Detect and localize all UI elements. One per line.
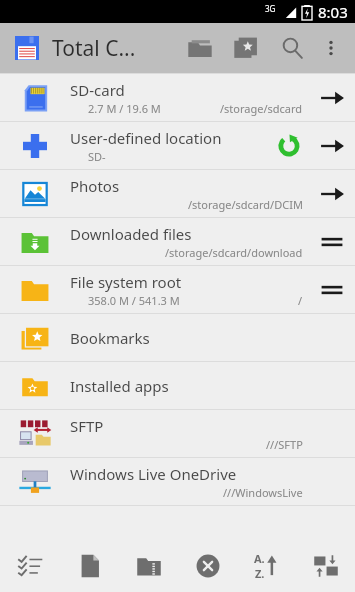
staticText: /storage/sdcard/download bbox=[165, 245, 303, 260]
staticText: Z. bbox=[255, 566, 265, 581]
staticText: ///SFTP bbox=[266, 437, 303, 452]
button[interactable]: More options bbox=[317, 34, 345, 62]
button[interactable]: User-defined location bbox=[0, 122, 355, 169]
staticText: 3G bbox=[265, 3, 276, 14]
button[interactable]: SD-card bbox=[0, 74, 355, 121]
button[interactable]: Menu bbox=[315, 273, 349, 307]
staticText: Bookmarks bbox=[70, 328, 150, 348]
button[interactable]: Cancel bbox=[178, 540, 237, 592]
button[interactable]: Bookmarks bbox=[0, 314, 355, 361]
staticText: SFTP bbox=[70, 416, 104, 436]
staticText: User-defined location bbox=[70, 128, 222, 148]
staticText: /storage/sdcard/DCIM bbox=[188, 197, 303, 212]
button[interactable]: Installed apps bbox=[0, 362, 355, 409]
button[interactable]: Photos bbox=[0, 170, 355, 217]
staticText: Photos bbox=[70, 176, 120, 196]
staticText: / bbox=[298, 293, 303, 308]
button[interactable]: Search bbox=[275, 31, 309, 65]
staticText: /storage/sdcard bbox=[220, 101, 303, 116]
staticText: A. bbox=[254, 551, 265, 566]
button[interactable]: Select bbox=[0, 540, 60, 592]
button[interactable]: Downloaded files bbox=[0, 218, 355, 265]
button[interactable]: Open bbox=[315, 81, 349, 115]
staticText: Installed apps bbox=[70, 376, 169, 396]
button[interactable]: Bookmarks bbox=[229, 31, 263, 65]
button[interactable]: Open bbox=[315, 177, 349, 211]
button[interactable]: Zip bbox=[119, 540, 178, 592]
staticText: SD- bbox=[88, 149, 106, 164]
button[interactable]: Folders bbox=[183, 31, 217, 65]
button[interactable]: Menu bbox=[315, 225, 349, 259]
staticText: 358.0 M / 541.3 M bbox=[88, 293, 180, 308]
button[interactable]: Sort bbox=[237, 540, 296, 592]
staticText: Total C... bbox=[52, 34, 136, 63]
button[interactable]: Exchange bbox=[296, 540, 355, 592]
button[interactable]: Windows Live OneDrive bbox=[0, 458, 355, 505]
staticText: ///WindowsLive bbox=[223, 485, 303, 500]
staticText: SD-card bbox=[70, 80, 125, 100]
staticText: Windows Live OneDrive bbox=[70, 464, 237, 484]
staticText: 8:03 bbox=[318, 2, 348, 22]
staticText: 2.7 M / 19.6 M bbox=[88, 101, 161, 116]
staticText: File system root bbox=[70, 272, 182, 292]
button[interactable]: New file bbox=[60, 540, 119, 592]
button[interactable]: SFTP bbox=[0, 410, 355, 457]
button[interactable]: App icon bbox=[10, 31, 44, 65]
button[interactable]: File system root bbox=[0, 266, 355, 313]
staticText: Downloaded files bbox=[70, 224, 192, 244]
button[interactable]: Open bbox=[315, 129, 349, 163]
